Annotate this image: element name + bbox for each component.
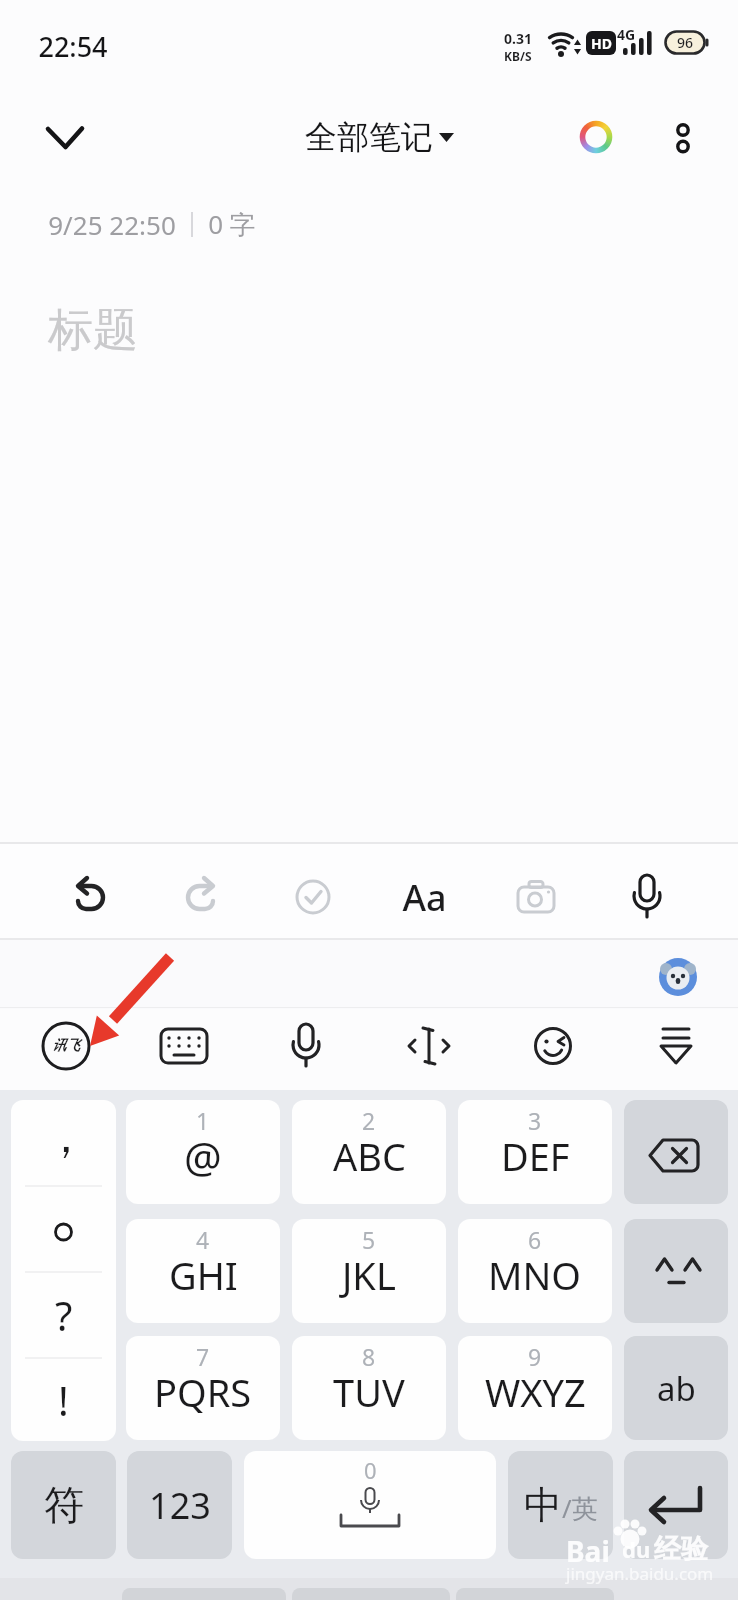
staticText: 中 [524, 1481, 562, 1529]
button[interactable] [58, 865, 122, 929]
button[interactable]: 6 [458, 1219, 612, 1323]
button[interactable]: 8 [292, 1336, 446, 1440]
button[interactable]: 0 [244, 1451, 496, 1559]
staticText: 0 [364, 1455, 377, 1485]
staticText: GHI [169, 1249, 238, 1301]
button[interactable]: 讯飞 [34, 1014, 98, 1078]
staticText: Aa [402, 873, 447, 922]
button[interactable]: 123 [127, 1451, 232, 1559]
button[interactable]: 2 [292, 1100, 446, 1204]
staticText: 6 [528, 1224, 542, 1255]
button[interactable]: 1 [126, 1100, 280, 1204]
staticText: @ [184, 1128, 222, 1185]
button[interactable] [624, 1451, 728, 1559]
button[interactable] [152, 1014, 216, 1078]
staticText: HD [591, 34, 612, 53]
staticText: 9 [528, 1341, 542, 1372]
staticText: 4 [196, 1224, 210, 1255]
staticText: JKL [342, 1249, 396, 1301]
button[interactable] [281, 865, 345, 929]
button[interactable]: 中 [508, 1451, 613, 1559]
button[interactable] [38, 117, 94, 159]
staticText: 5 [362, 1224, 376, 1255]
staticText: ab [657, 1366, 696, 1411]
button[interactable] [644, 1014, 708, 1078]
staticText: 96 [677, 33, 694, 52]
staticText: 7 [196, 1341, 210, 1372]
button[interactable] [615, 865, 679, 929]
button[interactable]: ab [624, 1336, 728, 1440]
button[interactable]: 9 [458, 1336, 612, 1440]
button[interactable]: ， [11, 1100, 116, 1441]
staticText: du [622, 1534, 651, 1564]
button[interactable] [397, 1014, 461, 1078]
button[interactable]: 7 [126, 1336, 280, 1440]
staticText: KB/S [504, 48, 532, 63]
staticText: PQRS [154, 1366, 252, 1418]
staticText: 9/25 22:50 [48, 207, 176, 242]
staticText: ? [55, 1288, 73, 1342]
staticText: ! [58, 1373, 69, 1427]
button[interactable]: 4 [126, 1219, 280, 1323]
staticText: 8 [362, 1341, 376, 1372]
staticText: 123 [149, 1481, 211, 1530]
staticText: 2 [362, 1105, 376, 1136]
button[interactable] [169, 865, 233, 929]
button[interactable] [624, 1100, 728, 1204]
staticText: /英 [562, 1490, 598, 1526]
staticText: DEF [501, 1130, 570, 1182]
staticText: ABC [333, 1130, 406, 1182]
staticText: WXYZ [485, 1366, 586, 1418]
button[interactable] [274, 1014, 338, 1078]
button[interactable]: 全部笔记 [0, 112, 738, 162]
staticText: 讯飞 [52, 1037, 80, 1055]
button[interactable]: 符 [11, 1451, 116, 1559]
staticText: 经验 [654, 1532, 708, 1566]
staticText: 全部笔记 [305, 117, 433, 157]
staticText: 22:54 [38, 28, 108, 65]
button[interactable] [624, 1219, 728, 1323]
button[interactable] [521, 1014, 585, 1078]
staticText: MNO [488, 1249, 582, 1301]
staticText: 0 字 [208, 206, 256, 242]
staticText: 1 [196, 1105, 210, 1136]
staticText: jingyan.baidu.com [566, 1562, 714, 1585]
staticText: 标题 [48, 302, 138, 359]
button[interactable]: Aa [392, 865, 456, 929]
staticText: 0.31 [504, 29, 532, 48]
button[interactable] [504, 865, 568, 929]
staticText: ， [44, 1110, 88, 1165]
button[interactable]: 5 [292, 1219, 446, 1323]
button[interactable] [664, 114, 704, 162]
button[interactable] [578, 119, 614, 155]
staticText: 4G [617, 25, 636, 44]
staticText: 符 [44, 1480, 84, 1530]
button[interactable]: 3 [458, 1100, 612, 1204]
staticText: 3 [528, 1105, 542, 1136]
staticText: Bai [566, 1532, 610, 1570]
staticText: TUV [333, 1366, 405, 1418]
